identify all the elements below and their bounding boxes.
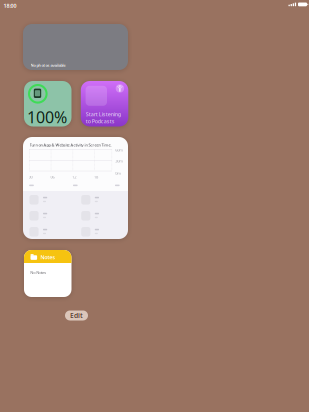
button[interactable]: Edit [65,310,88,320]
button[interactable]: Photos widget [23,24,128,70]
staticText: No Notes [30,270,46,275]
staticText: Start Listening to Podcasts [86,111,121,125]
button[interactable]: Screen Time [23,137,128,239]
staticText: 18:00 [4,2,17,9]
button[interactable]: Battery 100 percent [24,81,71,126]
staticText: 06 [50,174,54,180]
staticText: 0m [115,170,121,176]
button[interactable]: Start Listening to Podcasts [81,81,128,126]
staticText: 100% [27,106,67,128]
staticText: 00 [29,174,33,180]
staticText: Notes [40,254,55,261]
staticText: No photos available [31,63,66,68]
button[interactable]: Notes [24,250,71,297]
staticText: Edit [70,311,83,320]
staticText: 60m [115,147,123,153]
staticText: 18 [94,174,98,180]
staticText: Turn on App & Website Activity in Screen… [29,142,111,147]
staticText: 12 [72,174,76,180]
staticText: 30m [115,158,123,164]
